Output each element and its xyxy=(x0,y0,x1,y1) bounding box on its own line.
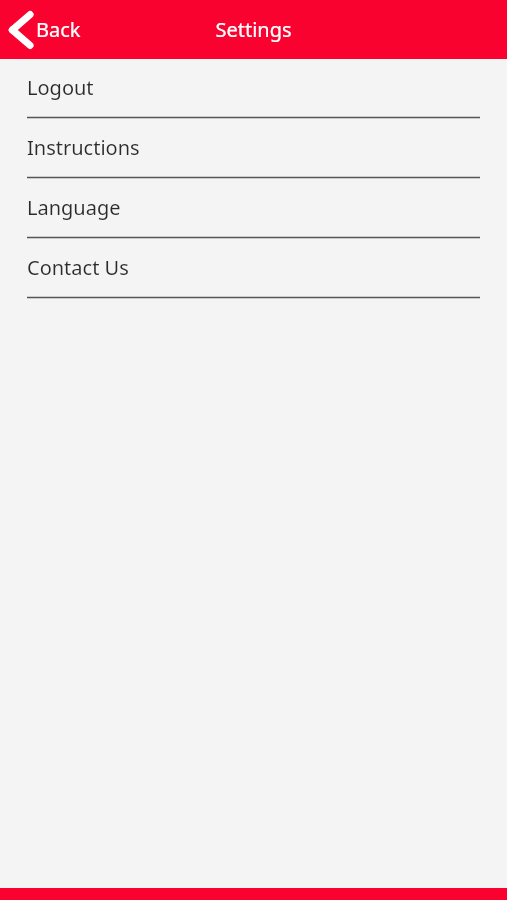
button[interactable]: Instructions xyxy=(0,119,507,179)
other: Back xyxy=(8,12,32,48)
staticText: Contact Us xyxy=(27,254,129,281)
button[interactable]: Language xyxy=(0,179,507,239)
staticText: Language xyxy=(27,194,121,221)
staticText: Settings xyxy=(215,16,292,43)
staticText: Back xyxy=(36,16,81,43)
button[interactable]: Contact Us xyxy=(0,239,507,299)
button[interactable]: Back xyxy=(0,0,91,59)
button[interactable]: Logout xyxy=(0,59,507,119)
staticText: Instructions xyxy=(27,134,140,161)
staticText: Logout xyxy=(27,74,94,101)
